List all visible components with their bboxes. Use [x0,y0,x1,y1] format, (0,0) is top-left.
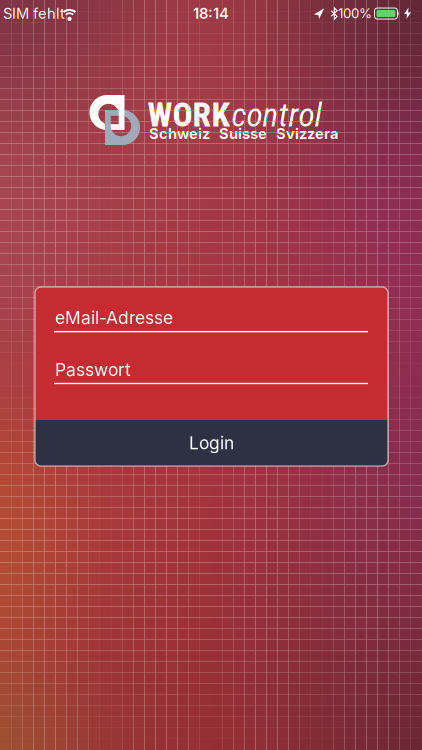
staticText: Suisse [219,125,267,142]
button[interactable]: Login [35,420,388,466]
staticText: WORK [147,95,230,135]
staticText: Svizzera [276,125,339,142]
staticText: 18:14 [193,5,229,22]
staticText: Schweiz [149,125,210,142]
staticText: Login [189,433,234,453]
staticText: eMail-Adresse [55,307,173,328]
staticText: SIM fehlt [3,5,65,22]
staticText: Passwort [55,359,131,380]
staticText: 100% [338,6,372,21]
staticText: control [231,95,321,135]
button[interactable]: Passwort [35,359,368,384]
button[interactable]: eMail-Adresse [35,307,368,332]
